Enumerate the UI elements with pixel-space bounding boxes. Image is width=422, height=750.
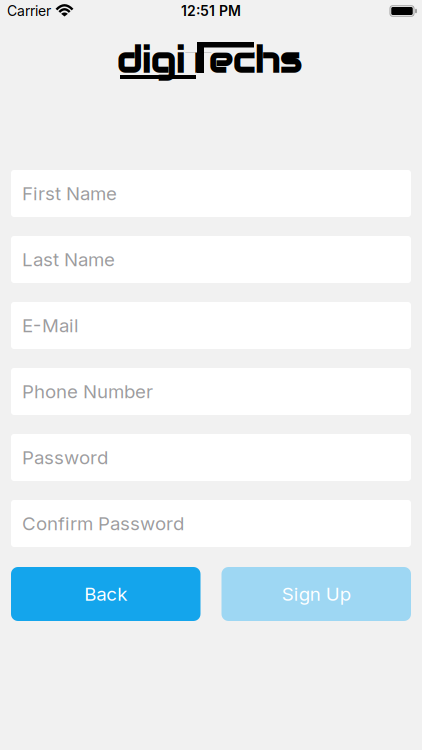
staticText: E-Mail (22, 314, 79, 337)
button[interactable]: Back (11, 567, 200, 621)
staticText: First Name (22, 182, 117, 205)
staticText: 12:51 PM (181, 2, 241, 19)
staticText: digiTechs (116, 37, 301, 83)
staticText: Back (84, 583, 127, 605)
button[interactable]: Phone Number (11, 368, 411, 415)
button[interactable]: Password (11, 434, 411, 481)
button[interactable]: E-Mail (11, 302, 411, 349)
button[interactable]: Sign Up (221, 567, 411, 621)
staticText: Sign Up (282, 583, 351, 605)
button[interactable]: Confirm Password (11, 500, 411, 547)
staticText: Confirm Password (22, 512, 184, 535)
button[interactable]: First Name (11, 170, 411, 217)
staticText: Last Name (22, 248, 115, 271)
staticText: Carrier (7, 2, 51, 19)
staticText: Phone Number (22, 380, 153, 403)
button[interactable]: Last Name (11, 236, 411, 283)
staticText: Password (22, 446, 108, 469)
